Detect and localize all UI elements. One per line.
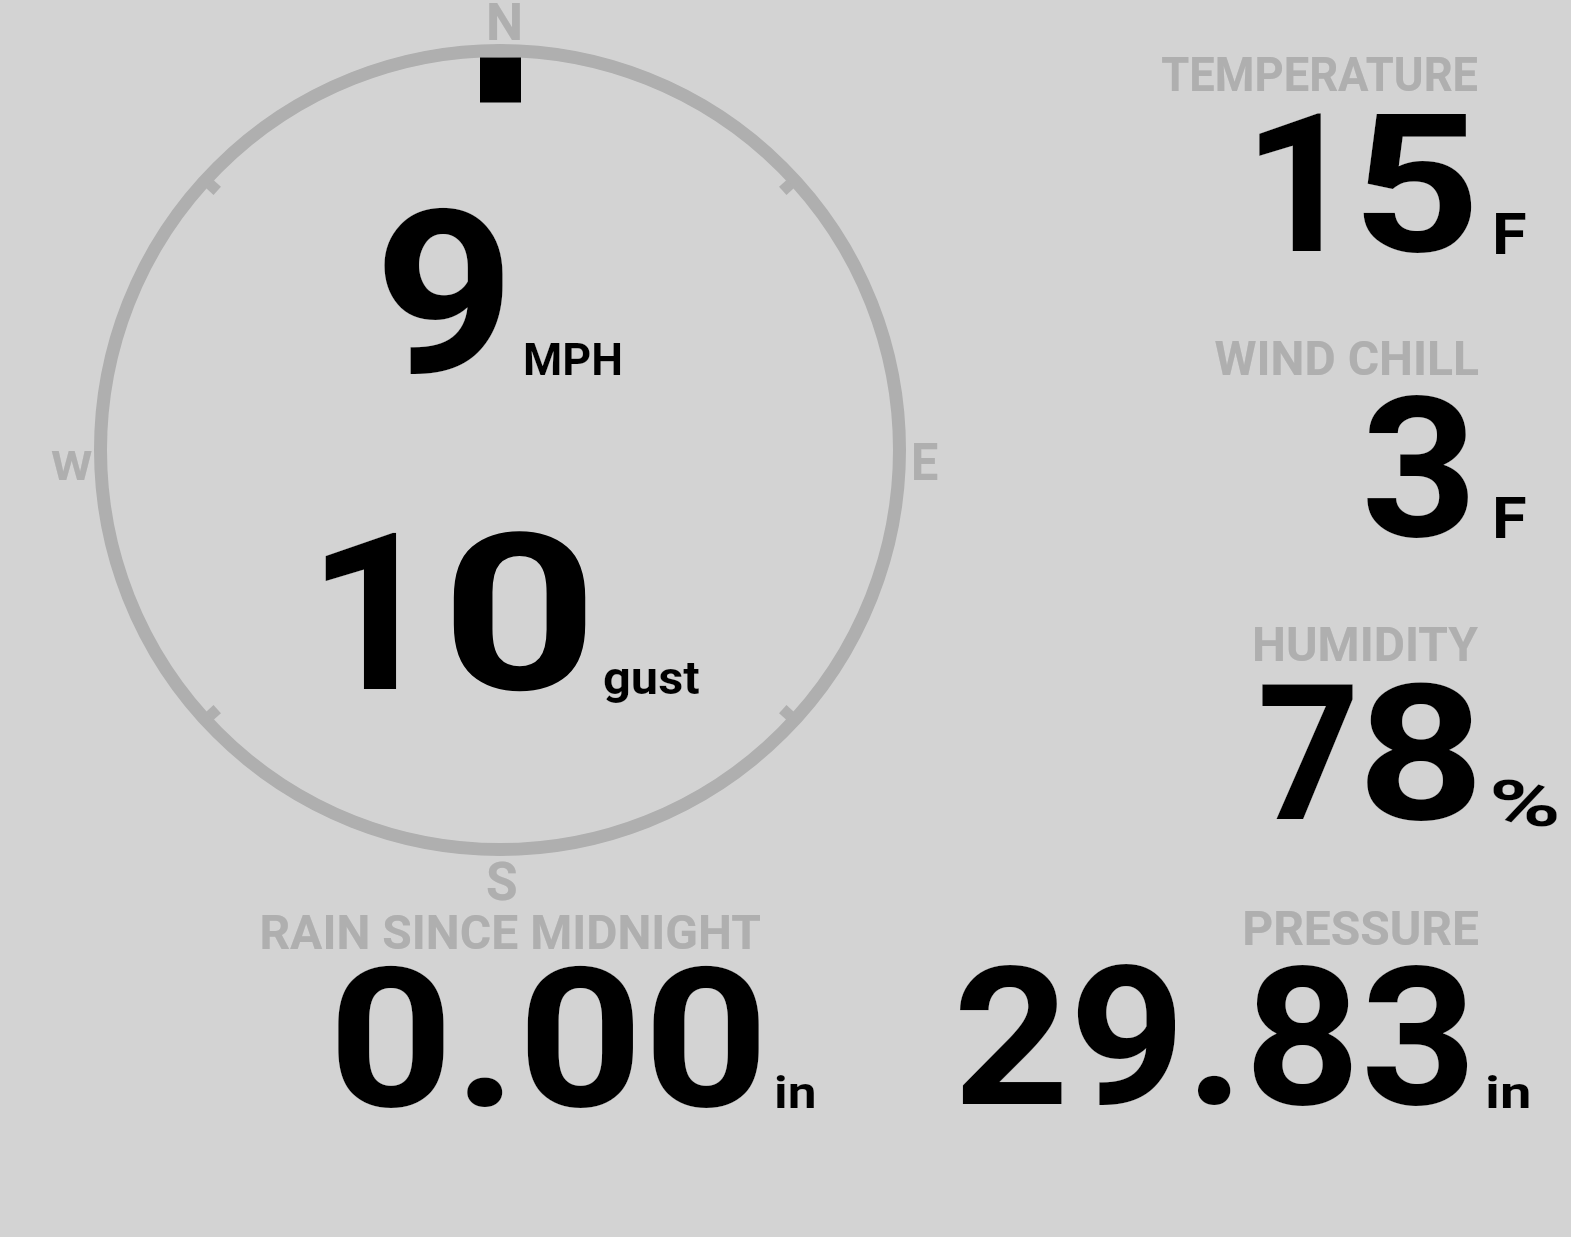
staticText: 0 [441, 486, 598, 743]
staticText: TEMPERATURE [535, 46, 1478, 102]
staticText: N [486, 0, 524, 53]
staticText: 1 [1243, 72, 1357, 298]
staticText: F [1492, 201, 1527, 268]
button[interactable]: Pressure 29.83 inches [900, 895, 1570, 1125]
staticText: 3 [1361, 356, 1479, 583]
staticText: HUMIDITY [478, 616, 1478, 672]
staticText: W [51, 443, 92, 490]
staticText: in [774, 1067, 817, 1119]
staticText: 5 [1352, 72, 1481, 298]
staticText: 1 [307, 486, 438, 743]
staticText: 29.83 [953, 925, 1478, 1151]
button[interactable]: Humidity 78 percent [1150, 610, 1570, 840]
staticText: WIND CHILL [479, 330, 1479, 386]
staticText: 0.00 [328, 926, 770, 1153]
staticText: 9 [374, 161, 515, 428]
button[interactable]: Wind direction compass [95, 50, 905, 860]
staticText: in [1485, 1067, 1532, 1119]
staticText: RAIN SINCE MIDNIGHT [0, 904, 761, 960]
button[interactable]: Rain since midnight 0.00 inches [250, 900, 830, 1125]
staticText: 8 [1357, 644, 1486, 865]
staticText: MPH [523, 334, 624, 386]
staticText: E [911, 433, 938, 493]
staticText: PRESSURE [479, 900, 1479, 956]
staticText: gust [603, 651, 700, 705]
staticText: % [1489, 767, 1562, 842]
staticText: 7 [1257, 644, 1361, 865]
staticText: F [1492, 485, 1527, 552]
staticText: S [486, 851, 518, 913]
button[interactable]: Temperature 15 degrees Fahrenheit [1150, 40, 1570, 270]
button[interactable]: Wind chill 3 degrees Fahrenheit [1150, 325, 1570, 555]
